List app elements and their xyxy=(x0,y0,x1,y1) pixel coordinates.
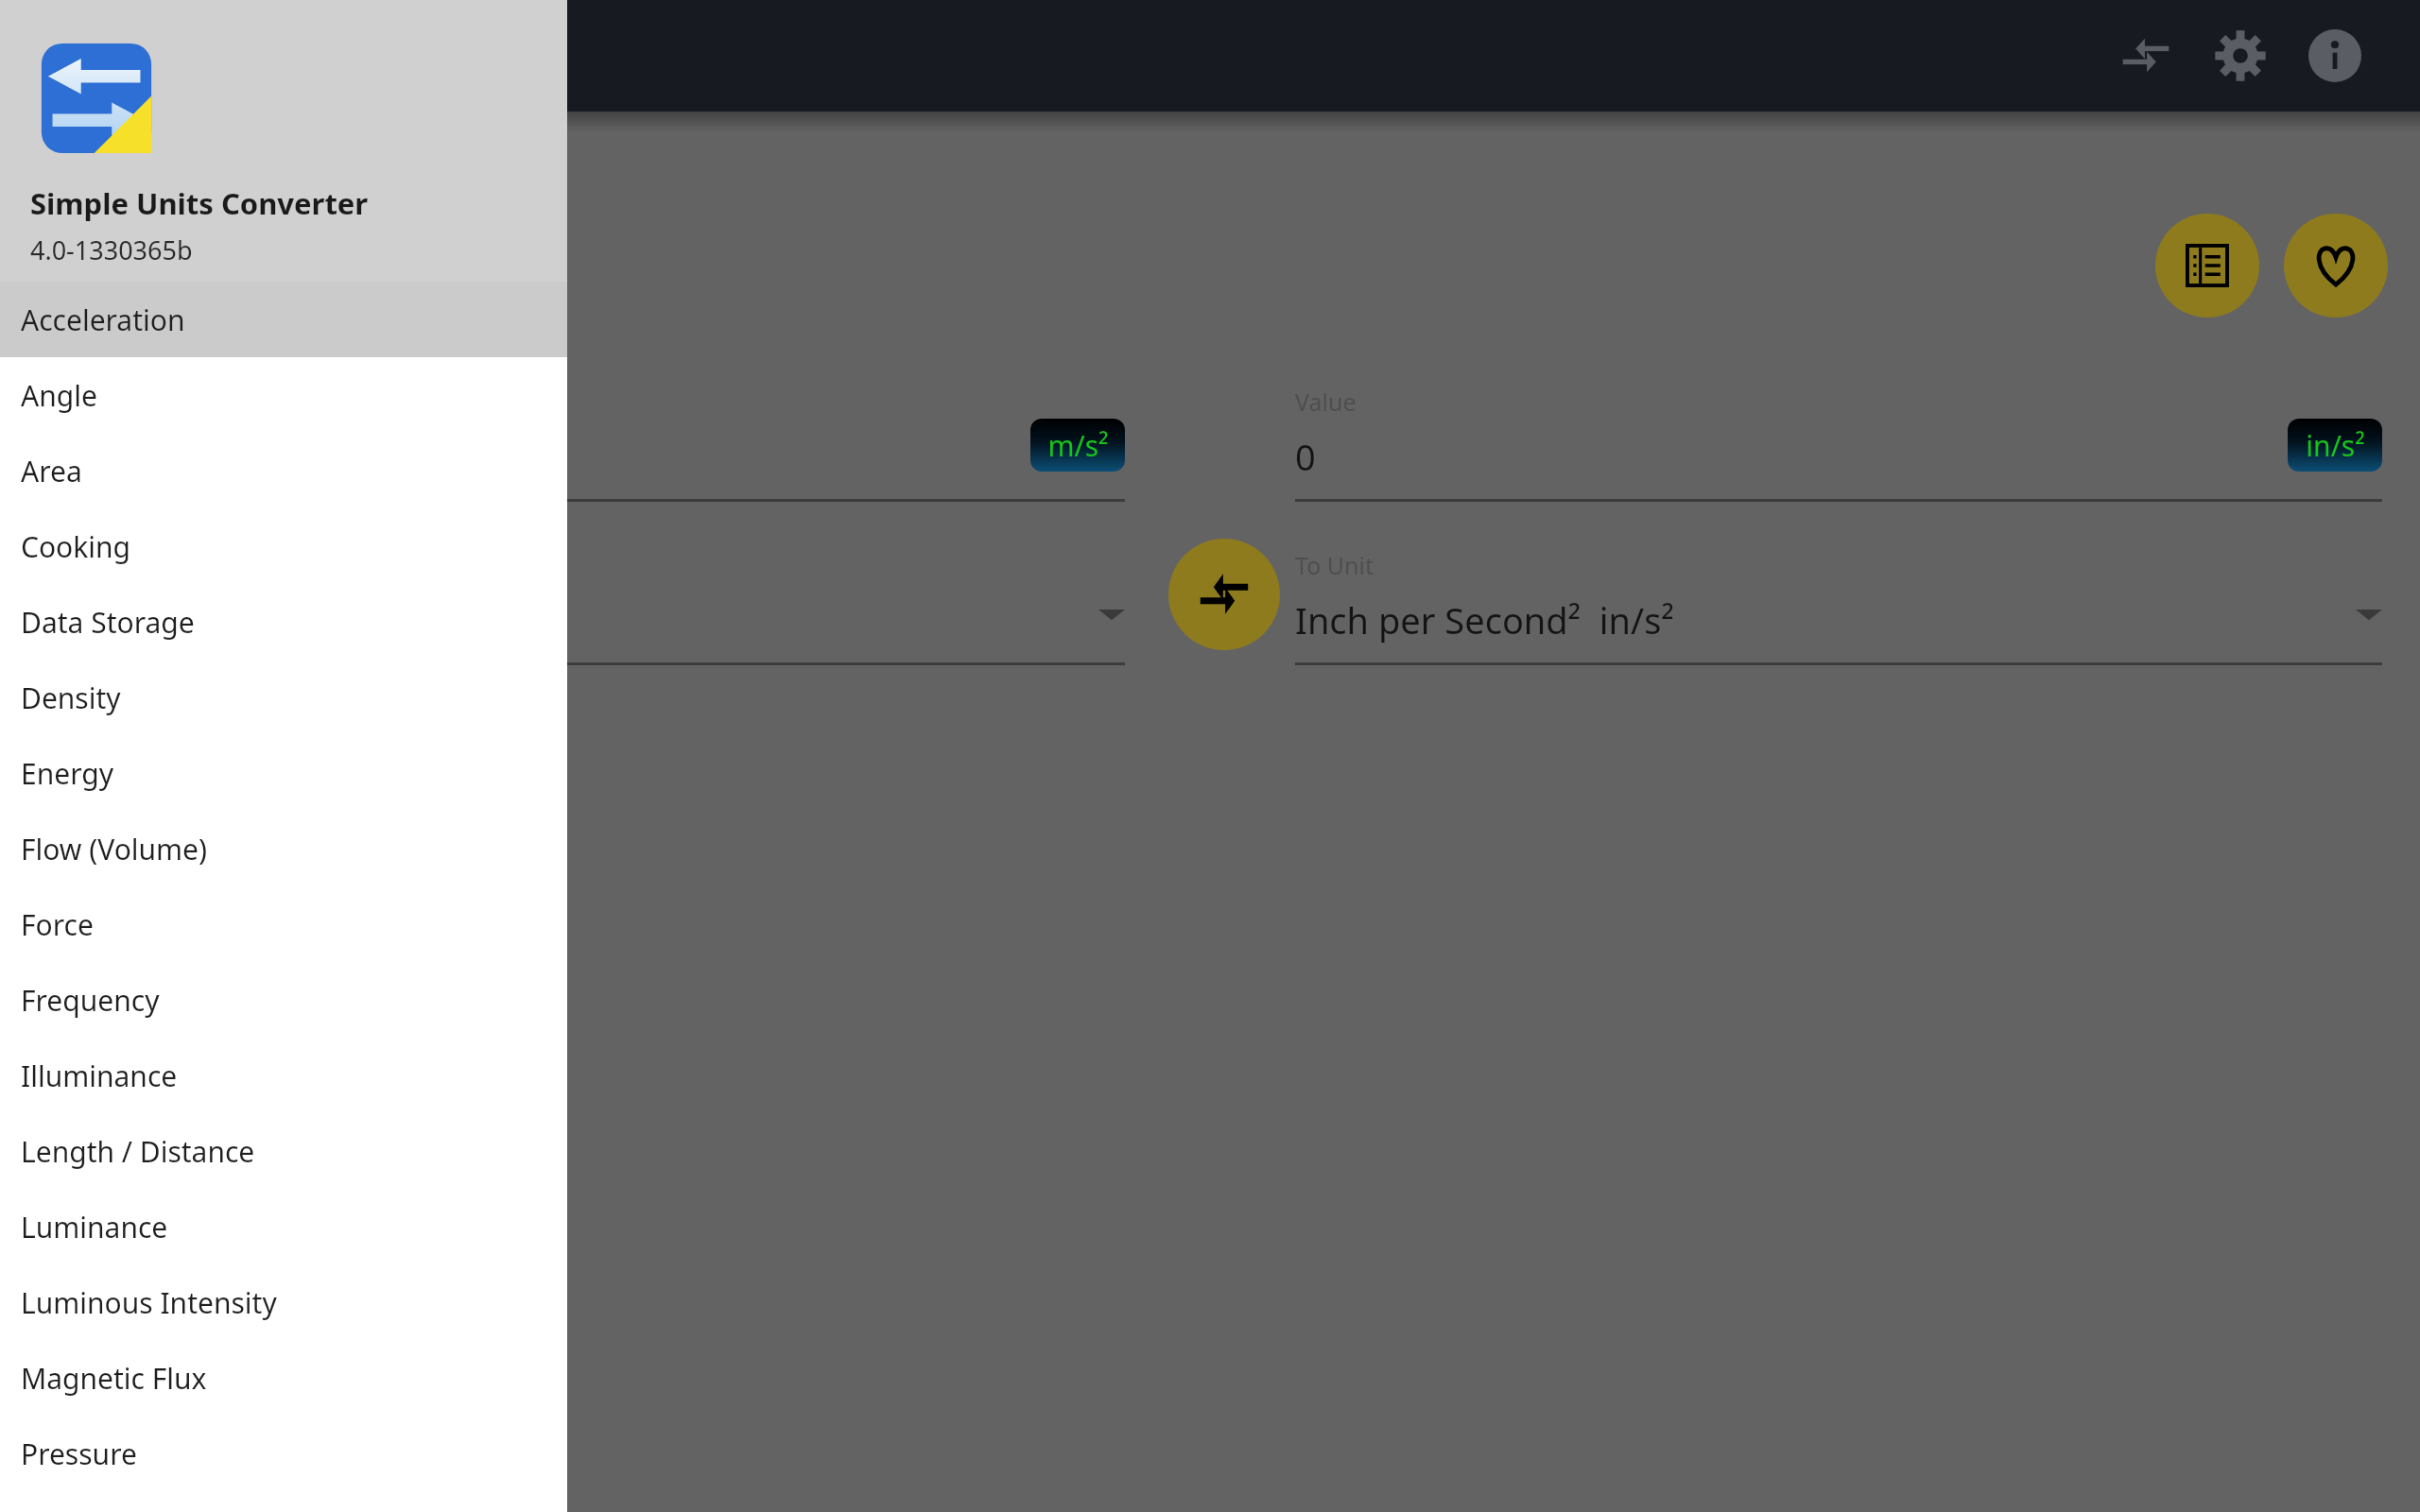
staticText: Simple Units Converter xyxy=(30,183,369,223)
staticText: Angle xyxy=(21,376,97,415)
button[interactable]: Density xyxy=(0,660,567,735)
button[interactable]: Luminance xyxy=(0,1189,567,1264)
button[interactable]: Favourites xyxy=(2284,214,2388,318)
button[interactable]: Value xyxy=(1295,386,2382,502)
button[interactable]: Cooking xyxy=(0,508,567,584)
staticText: Metre per Second² m/s² xyxy=(57,595,464,644)
button[interactable]: To Unit xyxy=(1295,549,2382,665)
staticText: Luminance xyxy=(21,1208,168,1246)
staticText: Cooking xyxy=(21,527,131,566)
staticText: To Unit xyxy=(1295,549,1374,581)
staticText: Pressure xyxy=(21,1435,137,1473)
button[interactable]: Area xyxy=(0,433,567,508)
staticText: Magnetic Flux xyxy=(21,1359,207,1398)
button[interactable]: From Unit xyxy=(57,549,1125,665)
button[interactable]: Pressure xyxy=(0,1416,567,1491)
button[interactable]: Length / Distance xyxy=(0,1113,567,1189)
staticText: 4.0-1330365b xyxy=(30,232,193,267)
button[interactable]: Force xyxy=(0,886,567,962)
staticText: Data Storage xyxy=(21,603,195,642)
staticText: Value xyxy=(57,386,118,418)
staticText: 0 xyxy=(1295,432,1316,481)
staticText: Frequency xyxy=(21,981,160,1020)
staticText: Force xyxy=(21,905,94,944)
staticText: Acceleration xyxy=(21,301,185,339)
button[interactable]: About xyxy=(2290,10,2380,101)
staticText: Illuminance xyxy=(21,1057,178,1095)
staticText: Length / Distance xyxy=(21,1132,255,1171)
button[interactable]: Illuminance xyxy=(0,1038,567,1113)
button[interactable]: Swap units xyxy=(2100,10,2191,101)
button[interactable]: Unit list xyxy=(2155,214,2259,318)
button[interactable]: Luminous Intensity xyxy=(0,1264,567,1340)
staticText: in/s² xyxy=(2306,426,2365,465)
button[interactable]: Acceleration xyxy=(0,282,567,357)
button[interactable]: Magnetic Flux xyxy=(0,1340,567,1416)
staticText: Value xyxy=(1295,386,1357,418)
button[interactable]: Data Storage xyxy=(0,584,567,660)
button[interactable]: Angle xyxy=(0,357,567,433)
button[interactable]: Frequency xyxy=(0,962,567,1038)
button[interactable]: Value xyxy=(57,386,1125,502)
staticText: Energy xyxy=(21,754,113,793)
button[interactable]: Energy xyxy=(0,735,567,811)
staticText: Area xyxy=(21,452,82,490)
staticText: Density xyxy=(21,679,121,717)
staticText: m/s² xyxy=(1047,426,1109,465)
button[interactable]: Settings xyxy=(2195,10,2286,101)
button[interactable]: Swap from and to units xyxy=(1168,539,1280,650)
staticText: Inch per Second² in/s² xyxy=(1295,595,1674,644)
button[interactable]: Flow (Volume) xyxy=(0,811,567,886)
button[interactable]: Simple Units Converter xyxy=(0,0,567,282)
staticText: Luminous Intensity xyxy=(21,1283,277,1322)
staticText: Flow (Volume) xyxy=(21,830,208,868)
staticText: 0 xyxy=(57,432,78,481)
staticText: From Unit xyxy=(57,549,168,581)
